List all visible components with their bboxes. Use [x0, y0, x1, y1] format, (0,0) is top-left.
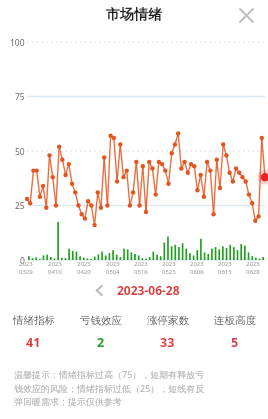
staticText: 0628 — [246, 268, 260, 276]
staticText: 2023 — [162, 260, 176, 268]
staticText: 0420 — [77, 268, 91, 276]
staticText: 75 — [15, 91, 25, 103]
staticText: 2023 — [19, 260, 33, 268]
staticText: 5 — [231, 334, 239, 351]
button[interactable]: 情绪指标 — [0, 314, 67, 351]
staticText: 0525 — [162, 268, 176, 276]
staticText: 2 — [97, 334, 105, 351]
button[interactable]: 亏钱效应 — [67, 314, 134, 351]
button[interactable]: 涨停家数 — [134, 314, 201, 351]
staticText: 0516 — [134, 268, 148, 276]
staticText: 2023 — [106, 260, 120, 268]
staticText: 0329 — [19, 268, 33, 276]
staticText: 2023 — [218, 260, 232, 268]
staticText: 亏钱效应 — [80, 314, 122, 327]
staticText: 0606 — [190, 268, 204, 276]
button[interactable]: 连板高度 — [201, 314, 268, 351]
staticText: 0410 — [48, 268, 62, 276]
button[interactable]: 2023-06-28 — [117, 282, 180, 298]
staticText: 涨停家数 — [147, 314, 189, 327]
button[interactable]: Previous day — [88, 279, 110, 301]
staticText: 情绪指标 — [13, 314, 55, 327]
button[interactable]: Close — [232, 1, 260, 29]
staticText: 2023 — [246, 260, 260, 268]
staticText: 弹回暖需求；提示仅供参考 — [14, 396, 122, 407]
staticText: 25 — [15, 200, 25, 212]
staticText: 2023 — [190, 260, 204, 268]
staticText: 钱效应的风险；情绪指标过低（25），短线有反 — [14, 382, 205, 394]
staticText: 2023 — [134, 260, 148, 268]
staticText: 温馨提示：情绪指标过高（75），短期有释放亏 — [14, 368, 205, 380]
staticText: 50 — [15, 146, 25, 158]
staticText: 100 — [10, 37, 25, 49]
staticText: 市场情绪 — [106, 6, 162, 24]
staticText: 0 — [20, 255, 25, 267]
staticText: 2023-06-28 — [117, 282, 180, 298]
staticText: 0615 — [218, 268, 232, 276]
staticText: 连板高度 — [214, 314, 256, 327]
staticText: 33 — [160, 334, 175, 351]
staticText: 2023 — [77, 260, 91, 268]
staticText: 0504 — [106, 268, 120, 276]
staticText: 41 — [26, 334, 41, 351]
staticText: 2023 — [48, 260, 62, 268]
